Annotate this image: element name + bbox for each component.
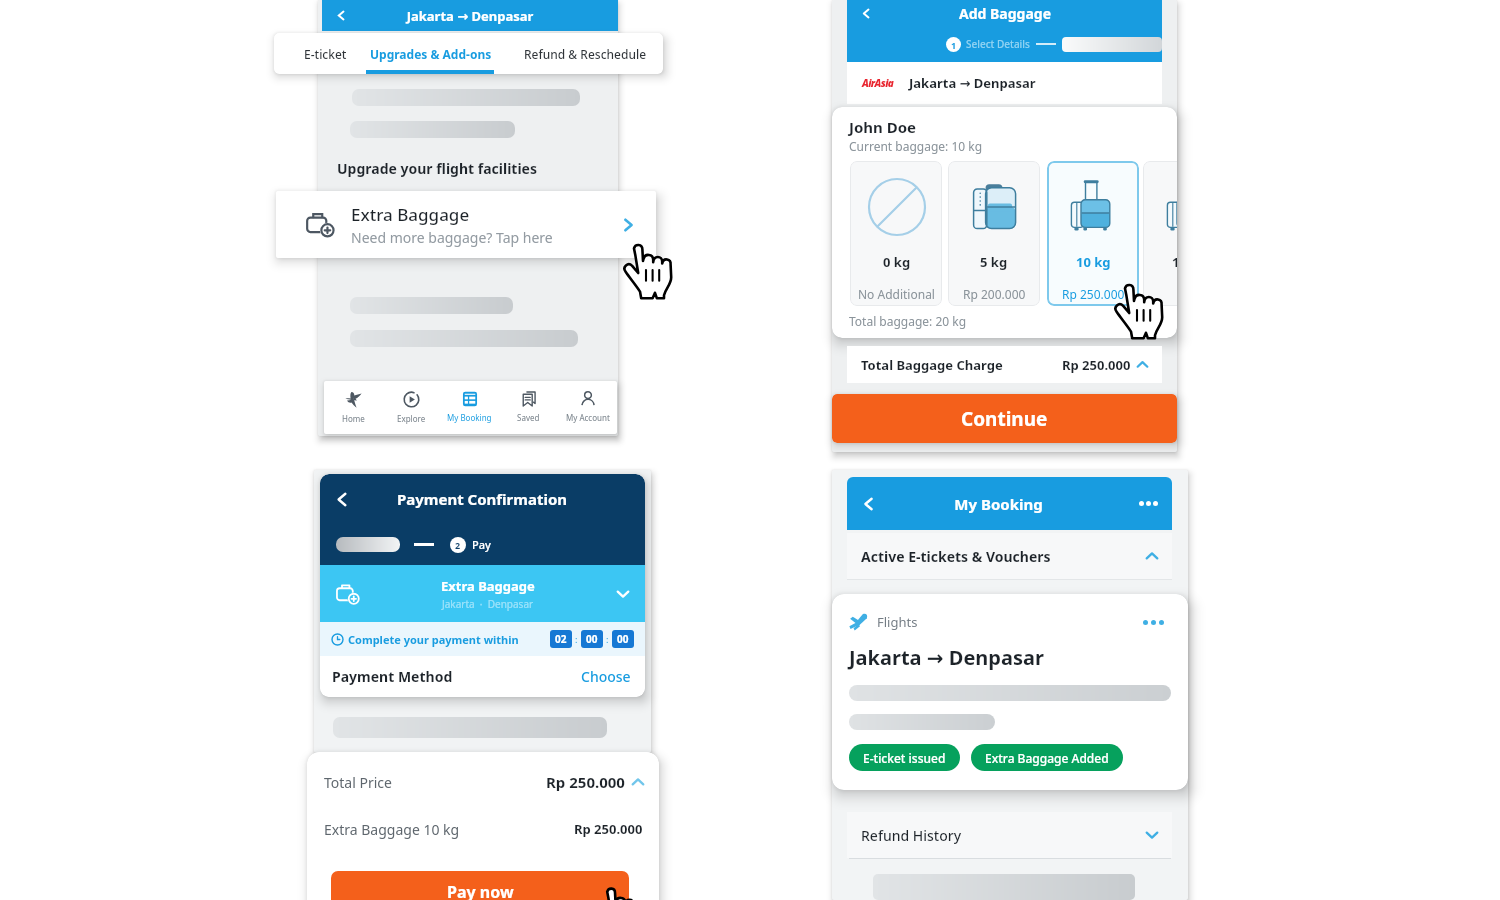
staticText: 2 (455, 539, 461, 551)
staticText: My Booking (891, 494, 1106, 514)
button[interactable]: More options (1135, 611, 1171, 633)
staticText: Extra Baggage Added (985, 750, 1109, 766)
staticText: Refund & Reschedule (524, 46, 647, 62)
button[interactable]: My Booking (440, 381, 499, 434)
staticText: Refund History (861, 826, 962, 845)
button[interactable]: 5 kg (948, 161, 1040, 306)
staticText: Continue (961, 406, 1048, 432)
staticText: Jakarta → Denpasar (360, 7, 580, 25)
staticText: Pay (472, 537, 491, 552)
staticText: Jakarta → Denpasar (909, 74, 1036, 92)
button[interactable]: E-ticket (280, 33, 370, 74)
staticText: Select Details (966, 37, 1030, 51)
button[interactable]: Back (322, 0, 360, 31)
button[interactable]: Refund & Reschedule (512, 33, 658, 74)
staticText: Total baggage: 20 kg (849, 313, 967, 329)
button[interactable]: Back (847, 477, 891, 530)
staticText: : (606, 633, 609, 645)
staticText: Rp 200.000 (963, 286, 1026, 302)
staticText: Flights (877, 613, 918, 631)
staticText: Complete your payment within (348, 632, 519, 647)
button[interactable]: Extra Baggage Added (971, 744, 1123, 771)
staticText: Payment Method (332, 667, 453, 686)
staticText: Total Price (324, 773, 392, 792)
staticText: E-ticket issued (863, 750, 946, 766)
staticText: 5 kg (980, 253, 1008, 271)
staticText: My Account (566, 412, 610, 423)
staticText: 02 (555, 632, 567, 646)
staticText: E-ticket (304, 46, 347, 62)
button[interactable]: Refund History (847, 812, 1172, 858)
button[interactable]: More options (1124, 477, 1172, 530)
staticText: Jakarta · Denpasar (442, 597, 534, 611)
button[interactable]: Active E-tickets & Vouchers (847, 533, 1172, 579)
button[interactable]: Payment Method (320, 656, 645, 697)
staticText: : (575, 633, 578, 645)
staticText: Upgrades & Add-ons (370, 46, 492, 62)
staticText: Home (342, 413, 365, 424)
staticText: Rp 250.000 (1062, 286, 1125, 302)
staticText: No Additional (858, 286, 935, 302)
button[interactable]: 10 kg (1047, 161, 1139, 306)
button[interactable]: My Account (558, 381, 617, 434)
staticText: Active E-tickets & Vouchers (861, 547, 1051, 566)
staticText: Need more baggage? Tap here (351, 228, 553, 247)
staticText: My Booking (447, 412, 492, 423)
button[interactable]: Pay now (331, 871, 629, 900)
staticText: Extra Baggage (441, 577, 535, 595)
button[interactable]: Explore (382, 381, 440, 434)
staticText: Rp 250.000 (1062, 356, 1131, 374)
staticText: Current baggage: 10 kg (849, 138, 983, 154)
staticText: Extra Baggage 10 kg (324, 820, 460, 839)
staticText: 00 (617, 632, 629, 646)
staticText: 1 (951, 39, 957, 51)
staticText: Payment Confirmation (364, 489, 600, 509)
button[interactable]: Home (324, 381, 382, 434)
staticText: Rp 250.000 (546, 772, 625, 792)
button[interactable]: E-ticket issued (849, 744, 960, 771)
staticText: Saved (517, 412, 540, 423)
staticText: Rp 250.000 (574, 820, 643, 838)
staticText: Explore (397, 413, 426, 424)
staticText: Add Baggage (885, 4, 1125, 23)
staticText: Choose (581, 667, 631, 686)
button[interactable]: 15 kg (1143, 161, 1177, 306)
staticText: 00 (586, 632, 598, 646)
staticText: Pay now (447, 881, 514, 900)
button[interactable]: Extra Baggage (276, 191, 656, 258)
staticText: John Doe (849, 117, 917, 137)
button[interactable]: Continue (832, 394, 1177, 443)
button[interactable]: Back (320, 474, 364, 524)
button[interactable]: Upgrades & Add-ons (366, 33, 496, 74)
staticText: 0 kg (883, 253, 911, 271)
staticText: Extra Baggage (351, 203, 470, 226)
staticText: Jakarta → Denpasar (849, 644, 1044, 671)
staticText: 10 kg (1076, 253, 1111, 271)
button[interactable]: Saved (499, 381, 558, 434)
staticText: Total Baggage Charge (861, 356, 1003, 374)
button[interactable]: Back (847, 0, 885, 26)
button[interactable]: 0 kg (850, 161, 942, 306)
staticText: 15 kg (1172, 253, 1177, 271)
staticText: AirAsia (862, 76, 894, 90)
staticText: Upgrade your flight facilities (337, 159, 537, 178)
